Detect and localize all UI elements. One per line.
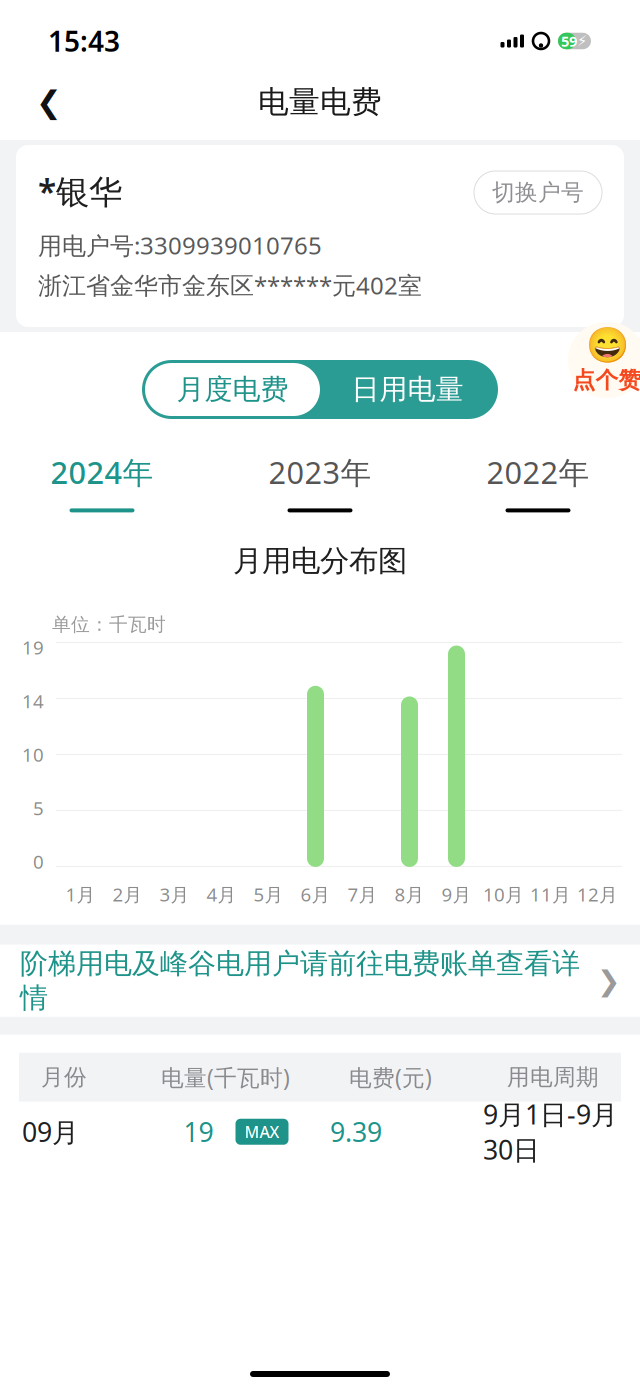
- staticText: 19: [22, 635, 44, 660]
- staticText: 09月: [22, 1114, 79, 1149]
- staticText: 2月: [112, 882, 142, 907]
- staticText: 9.39: [330, 1114, 382, 1149]
- staticText: 5: [33, 796, 44, 820]
- staticText: 4月: [206, 882, 236, 907]
- staticText: 1月: [65, 882, 95, 907]
- staticText: ❮: [36, 85, 62, 119]
- staticText: 11月: [530, 882, 571, 907]
- staticText: 点个赞: [572, 366, 640, 394]
- button[interactable]: 切换户号: [474, 171, 602, 214]
- staticText: 8月: [394, 882, 424, 907]
- staticText: 0: [33, 849, 44, 874]
- staticText: 10: [22, 742, 44, 767]
- button[interactable]: 阶梯用电及峰谷电用户请前往电费账单查看详情: [0, 945, 640, 1017]
- staticText: 😄: [585, 326, 628, 365]
- staticText: 10月: [483, 882, 524, 907]
- staticText: 阶梯用电及峰谷电用户请前往电费账单查看详情: [20, 946, 580, 1015]
- staticText: 5月: [253, 882, 283, 907]
- staticText: 12月: [577, 882, 618, 907]
- staticText: 9月: [441, 882, 471, 907]
- staticText: ⚡︎: [577, 33, 587, 49]
- staticText: ❯: [597, 965, 620, 997]
- staticText: *银华: [38, 169, 122, 213]
- staticText: 月度电费: [176, 372, 288, 407]
- staticText: 电量电费: [258, 83, 382, 121]
- staticText: 电量(千瓦时): [161, 1062, 290, 1092]
- staticText: 日用电量: [351, 372, 463, 407]
- staticText: 电费(元): [349, 1062, 432, 1092]
- staticText: 切换户号: [492, 179, 584, 206]
- staticText: 19: [183, 1114, 213, 1149]
- staticText: 浙江省金华市金东区******元402室: [38, 269, 422, 301]
- button[interactable]: 2022年: [448, 445, 628, 519]
- staticText: 14: [22, 688, 44, 713]
- staticText: 用电周期: [507, 1063, 599, 1091]
- staticText: 9月1日-9月30日: [483, 1096, 618, 1167]
- staticText: 3月: [159, 882, 189, 907]
- staticText: 6月: [300, 882, 330, 907]
- staticText: 59: [561, 31, 577, 51]
- staticText: 2022年: [486, 452, 589, 492]
- staticText: 2023年: [268, 452, 371, 492]
- staticText: MAX: [244, 1121, 279, 1142]
- button[interactable]: Back: [22, 75, 76, 129]
- button[interactable]: 09月: [0, 1102, 640, 1162]
- staticText: 7月: [347, 882, 377, 907]
- staticText: 月份: [41, 1063, 87, 1091]
- staticText: 单位：千瓦时: [52, 613, 166, 636]
- button[interactable]: 月度电费: [145, 363, 320, 416]
- staticText: 15:43: [48, 22, 120, 60]
- button[interactable]: 日用电量: [320, 363, 495, 416]
- staticText: 2024年: [50, 452, 153, 492]
- staticText: 用电户号:3309939010765: [38, 229, 322, 261]
- button[interactable]: 2024年: [12, 445, 192, 519]
- button[interactable]: 点个赞: [568, 322, 640, 398]
- staticText: 月用电分布图: [233, 543, 407, 579]
- button[interactable]: 2023年: [230, 445, 410, 519]
